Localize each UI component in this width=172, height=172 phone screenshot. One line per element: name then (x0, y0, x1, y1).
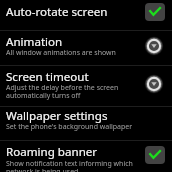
staticText: Set the phone's background wallpaper (6, 122, 133, 132)
button[interactable]: Screen timeout (0, 66, 172, 106)
button[interactable]: Checkbox checked (145, 146, 165, 164)
button[interactable]: Wallpaper settings (0, 107, 172, 140)
staticText: Animation (6, 34, 63, 50)
staticText: Roaming banner (6, 144, 98, 160)
staticText: Wallpaper settings (6, 108, 108, 124)
button[interactable]: Expand (143, 74, 165, 93)
button[interactable]: Checkbox checked (145, 3, 165, 21)
button[interactable]: Roaming banner (0, 141, 172, 172)
button[interactable]: Animation (0, 31, 172, 65)
staticText: Screen timeout (6, 69, 89, 85)
staticText: Auto-rotate screen (6, 4, 108, 20)
staticText: Adjust the delay before the screen autom… (6, 83, 140, 100)
staticText: All window animations are shown (6, 48, 116, 58)
staticText: Show notification text informing which n… (6, 159, 142, 172)
button[interactable]: Auto-rotate screen (0, 0, 172, 30)
button[interactable]: Expand (143, 36, 165, 55)
